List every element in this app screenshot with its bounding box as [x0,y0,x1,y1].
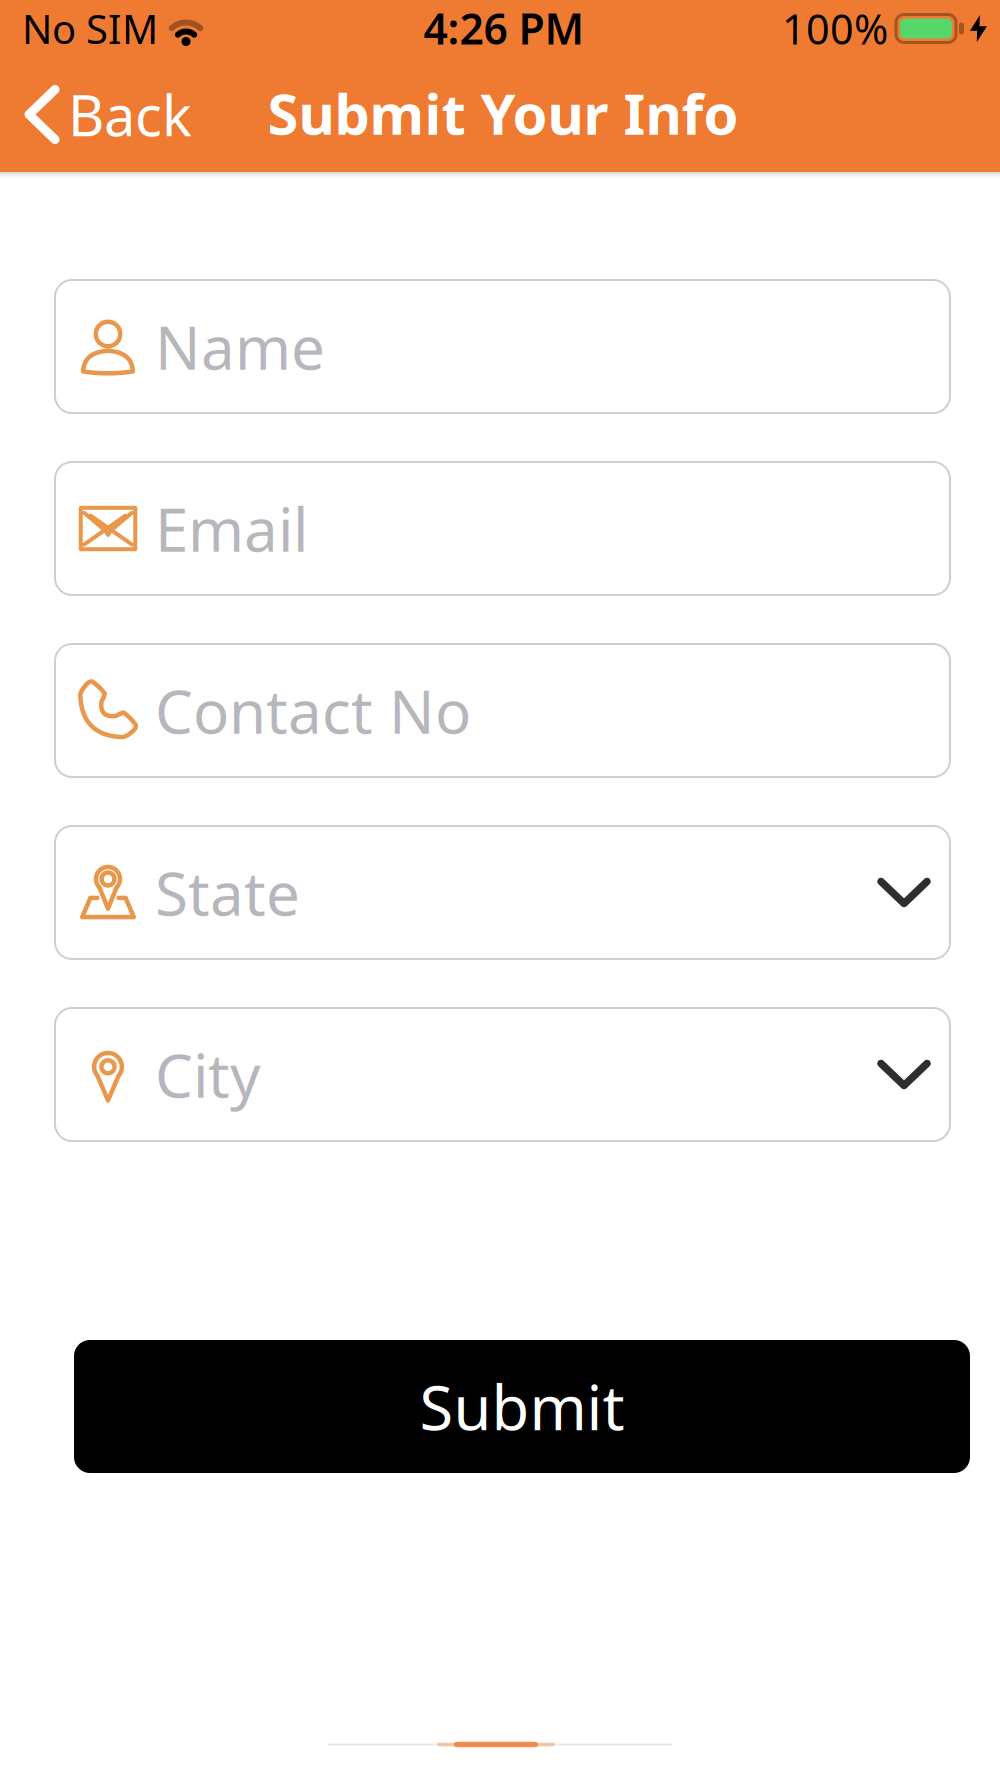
staticText: City [155,1035,261,1114]
staticText: 100% [782,1,888,56]
button[interactable]: State [55,826,950,959]
staticText: Name [155,307,325,386]
button[interactable]: Name [55,280,950,413]
staticText: Back [68,77,192,152]
staticText: 4:26 PM [423,0,584,56]
staticText: No SIM [22,2,158,55]
staticText: Submit Your Info [267,76,738,150]
staticText: Submit [419,1366,624,1447]
button[interactable]: Contact No [55,644,950,777]
staticText: Contact No [155,671,471,750]
button[interactable]: Submit [74,1340,970,1473]
staticText: State [155,853,300,932]
button[interactable]: City [55,1008,950,1141]
staticText: Email [155,489,308,568]
button[interactable]: Email [55,462,950,595]
button[interactable]: Back [0,77,192,152]
